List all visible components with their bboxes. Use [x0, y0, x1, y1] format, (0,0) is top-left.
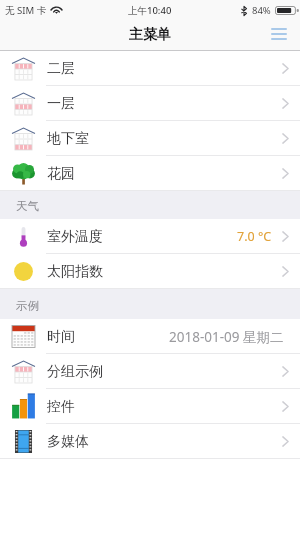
staticText: 84%	[252, 4, 271, 17]
button[interactable]: 分组示例	[0, 354, 300, 389]
staticText: 上午10:40	[128, 4, 172, 17]
button[interactable]: 地下室	[0, 121, 300, 156]
staticText: 一层	[47, 95, 75, 113]
staticText: 7.0 °C	[237, 228, 272, 245]
staticText: 多媒体	[47, 433, 89, 451]
staticText: 无 SIM 卡	[5, 4, 47, 17]
staticText: 二层	[47, 60, 75, 78]
staticText: 分组示例	[47, 363, 103, 381]
staticText: 花园	[47, 165, 75, 183]
button[interactable]: 花园	[0, 156, 300, 191]
staticText: 时间	[47, 328, 75, 346]
staticText: 太阳指数	[47, 263, 103, 281]
button[interactable]: Menu	[266, 21, 292, 47]
button[interactable]: 太阳指数	[0, 254, 300, 289]
button[interactable]: 时间	[0, 319, 300, 354]
staticText: 2018-01-09 星期二	[169, 328, 284, 346]
staticText: 示例	[16, 299, 39, 313]
staticText: 控件	[47, 398, 75, 416]
button[interactable]: 室外温度	[0, 219, 300, 254]
button[interactable]: 控件	[0, 389, 300, 424]
staticText: 地下室	[47, 130, 89, 148]
button[interactable]: 多媒体	[0, 424, 300, 459]
staticText: 室外温度	[47, 228, 103, 246]
staticText: 天气	[16, 199, 39, 213]
button[interactable]: 二层	[0, 51, 300, 86]
button[interactable]: 一层	[0, 86, 300, 121]
staticText: 主菜单	[129, 26, 171, 44]
